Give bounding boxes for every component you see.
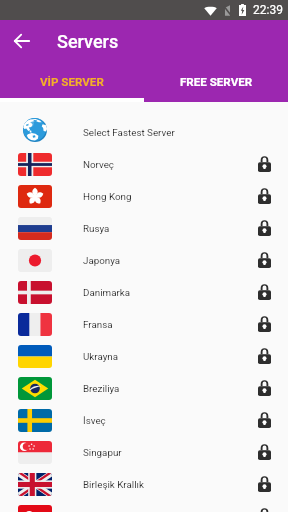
staticText: Danimarka xyxy=(83,287,131,298)
staticText: Rusya xyxy=(83,223,110,234)
staticText: VİP SERVER xyxy=(40,75,104,89)
button[interactable]: VİP SERVER xyxy=(0,62,144,102)
staticText: Singapur xyxy=(83,447,122,458)
staticText: Fransa xyxy=(83,319,113,330)
button[interactable]: Locked xyxy=(252,312,276,336)
staticText: Breziliya xyxy=(83,383,120,394)
staticText: 22:39 xyxy=(253,3,283,17)
button[interactable]: Locked xyxy=(252,440,276,464)
button[interactable]: FREE SERVER xyxy=(144,62,288,102)
staticText: Servers xyxy=(57,31,119,52)
staticText: Norveç xyxy=(83,159,114,170)
button[interactable]: Select Fastest Server xyxy=(0,116,288,148)
button[interactable]: Locked xyxy=(252,152,276,176)
button[interactable]: Ukrayna xyxy=(0,340,288,372)
button[interactable]: Birleşik Krallık xyxy=(0,468,288,500)
button[interactable]: Locked xyxy=(252,504,276,512)
button[interactable]: İsveç xyxy=(0,404,288,436)
button[interactable]: Back xyxy=(10,29,34,53)
button[interactable]: Danimarka xyxy=(0,276,288,308)
button[interactable]: Singapur xyxy=(0,436,288,468)
button[interactable]: Locked xyxy=(252,184,276,208)
button[interactable]: Türkiye xyxy=(0,500,288,512)
staticText: Ukrayna xyxy=(83,351,119,362)
staticText: Birleşik Krallık xyxy=(83,479,144,490)
staticText: Select Fastest Server xyxy=(83,127,175,138)
staticText: FREE SERVER xyxy=(180,75,253,89)
staticText: İsveç xyxy=(83,415,106,426)
button[interactable]: Locked xyxy=(252,376,276,400)
button[interactable]: Locked xyxy=(252,216,276,240)
staticText: Japonya xyxy=(83,255,121,266)
button[interactable]: Locked xyxy=(252,280,276,304)
staticText: Hong Kong xyxy=(83,191,132,202)
button[interactable]: Breziliya xyxy=(0,372,288,404)
button[interactable]: Locked xyxy=(252,472,276,496)
button[interactable]: Japonya xyxy=(0,244,288,276)
button[interactable]: Rusya xyxy=(0,212,288,244)
button[interactable]: Locked xyxy=(252,248,276,272)
button[interactable]: Locked xyxy=(252,344,276,368)
button[interactable]: Locked xyxy=(252,408,276,432)
button[interactable]: Norveç xyxy=(0,148,288,180)
button[interactable]: Hong Kong xyxy=(0,180,288,212)
button[interactable]: Fransa xyxy=(0,308,288,340)
